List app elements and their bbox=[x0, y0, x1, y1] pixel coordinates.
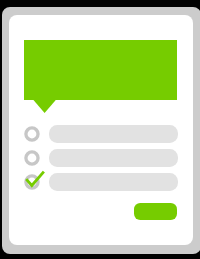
button[interactable]: Option one bbox=[24, 125, 178, 143]
button[interactable]: Option three bbox=[24, 173, 178, 191]
button[interactable]: Send bbox=[134, 203, 177, 220]
button[interactable]: Option two bbox=[24, 149, 178, 167]
